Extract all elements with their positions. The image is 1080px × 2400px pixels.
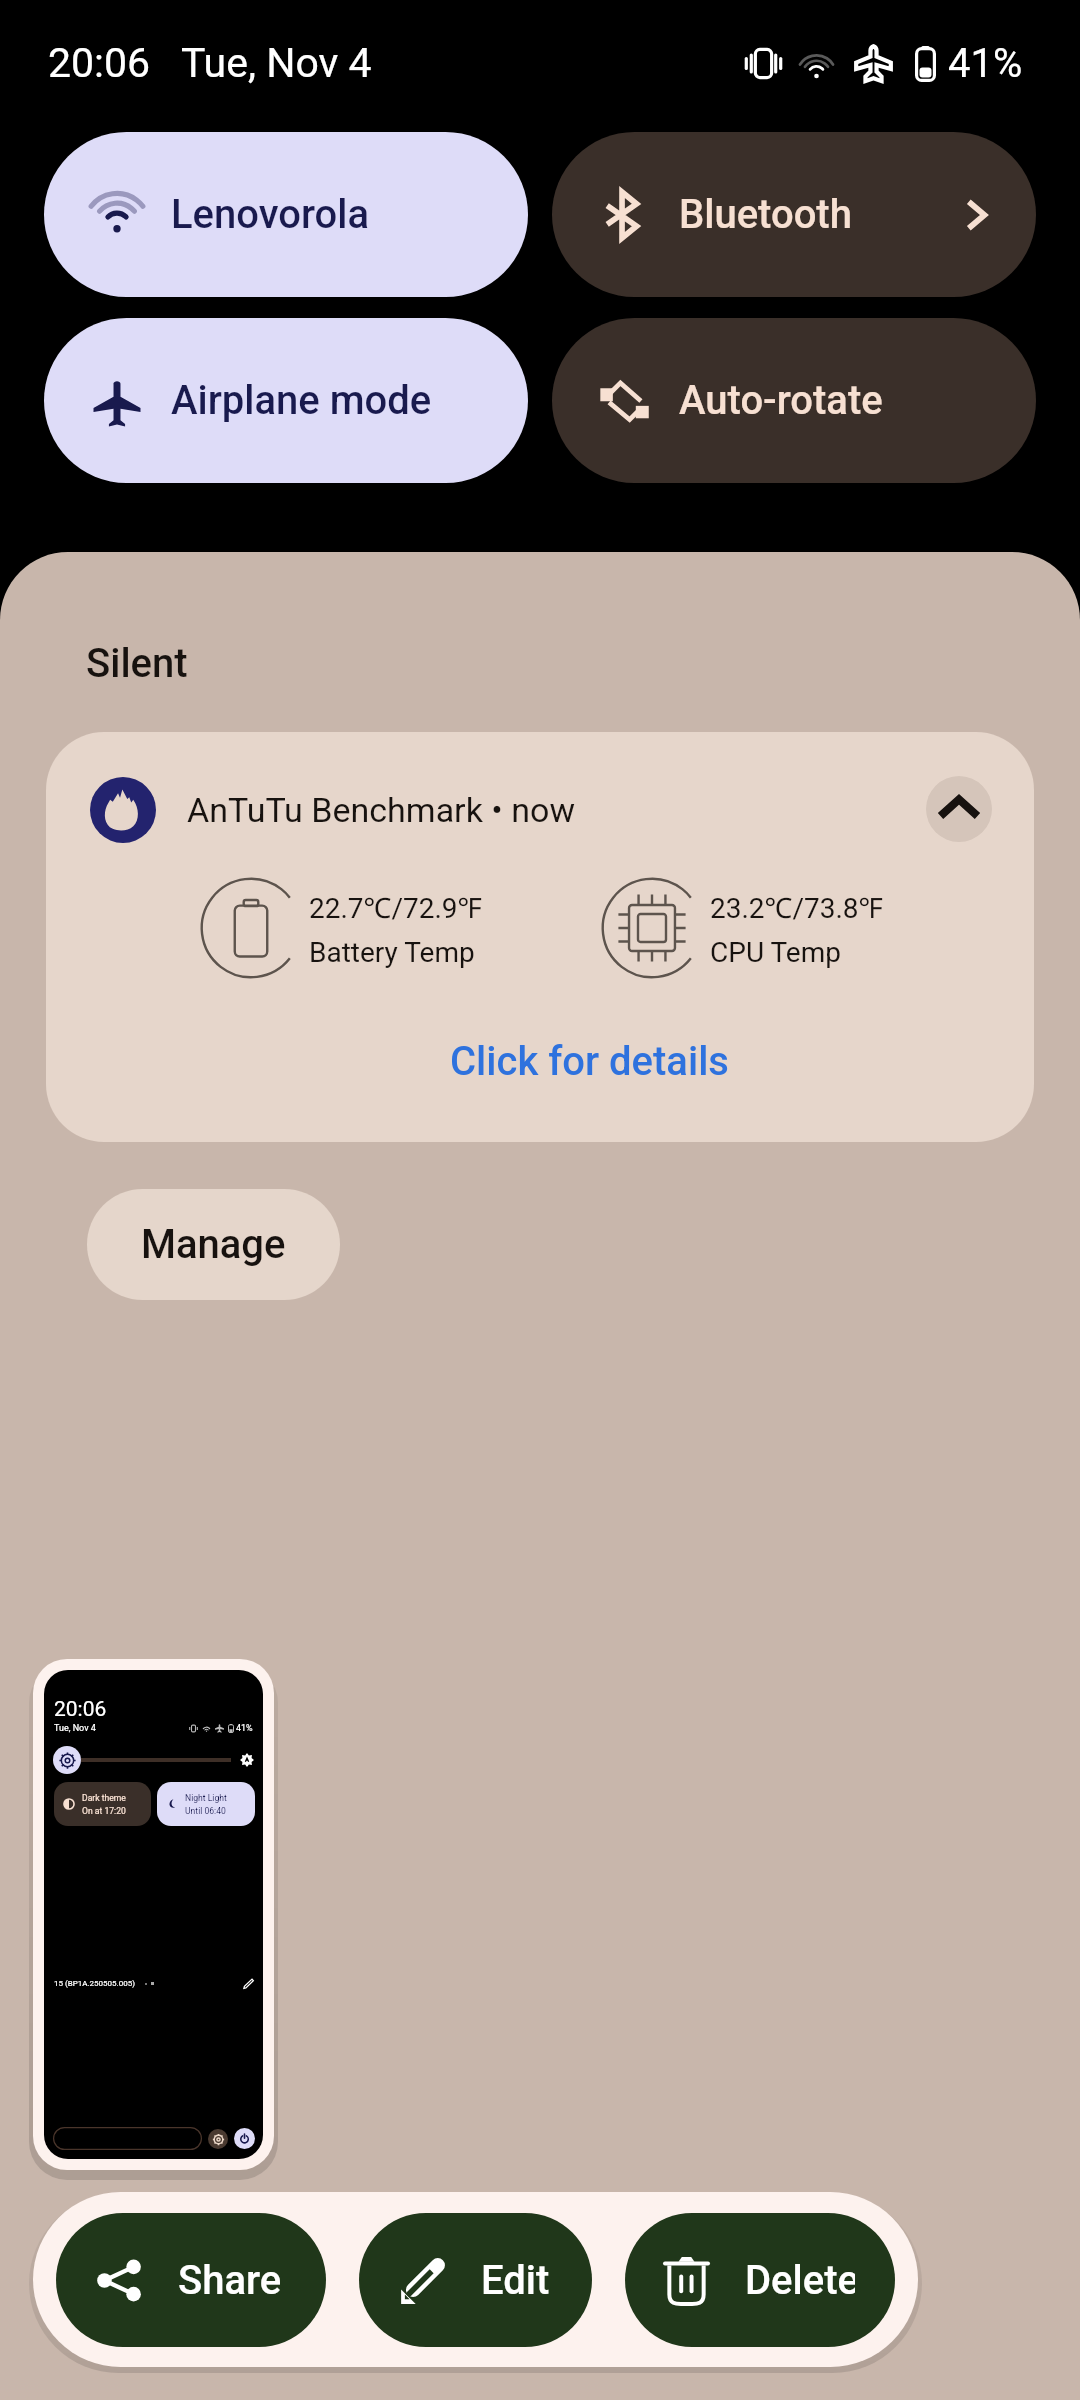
staticText: Dark theme <box>82 1793 126 1803</box>
staticText: Manage <box>141 1221 286 1268</box>
staticText: 23.2℃/73.8℉ <box>710 888 884 926</box>
button[interactable]: Manage <box>87 1189 340 1300</box>
staticText: Share <box>178 2257 282 2304</box>
staticText: Silent <box>86 640 188 687</box>
button[interactable]: Night Light <box>157 1782 255 1826</box>
staticText: Click for details <box>450 1038 729 1085</box>
staticText: Lenovorola <box>171 191 486 238</box>
staticText: AnTuTu Benchmark • now <box>187 790 575 830</box>
staticText: 20:06 <box>54 1697 107 1722</box>
staticText: 20:06 <box>48 39 151 87</box>
staticText: CPU Temp <box>710 936 841 969</box>
staticText: 15 (BP1A.250505.005) <box>54 1979 135 1988</box>
button[interactable]: Lenovorola <box>44 132 528 297</box>
staticText: Tue, Nov 4 <box>54 1723 96 1734</box>
button[interactable]: Dark theme <box>54 1782 151 1826</box>
button[interactable]: Screenshot preview <box>33 1659 274 2170</box>
button[interactable]: Bluetooth <box>552 132 1036 297</box>
staticText: Edit <box>481 2257 550 2304</box>
button[interactable]: Delete <box>625 2213 895 2347</box>
button[interactable]: Airplane mode <box>44 318 528 483</box>
staticText: Battery Temp <box>309 936 475 969</box>
staticText: On at 17:20 <box>82 1806 126 1816</box>
staticText: Until 06:40 <box>185 1806 226 1816</box>
staticText: Night Light <box>185 1793 227 1803</box>
staticText: Tue, Nov 4 <box>181 39 372 87</box>
staticText: Airplane mode <box>171 377 486 424</box>
staticText: Delete <box>745 2257 855 2304</box>
button[interactable]: Edit <box>359 2213 592 2347</box>
staticText: Bluetooth <box>679 191 958 238</box>
button[interactable]: Auto-rotate <box>552 318 1036 483</box>
button[interactable]: AnTuTu Benchmark • now <box>46 732 1034 1142</box>
staticText: Auto-rotate <box>679 377 994 424</box>
button[interactable]: Collapse notification <box>926 776 992 842</box>
staticText: 22.7℃/72.9℉ <box>309 888 483 926</box>
staticText: 41% <box>236 1723 253 1734</box>
button[interactable]: Share <box>56 2213 326 2347</box>
staticText: 41% <box>948 40 1023 87</box>
